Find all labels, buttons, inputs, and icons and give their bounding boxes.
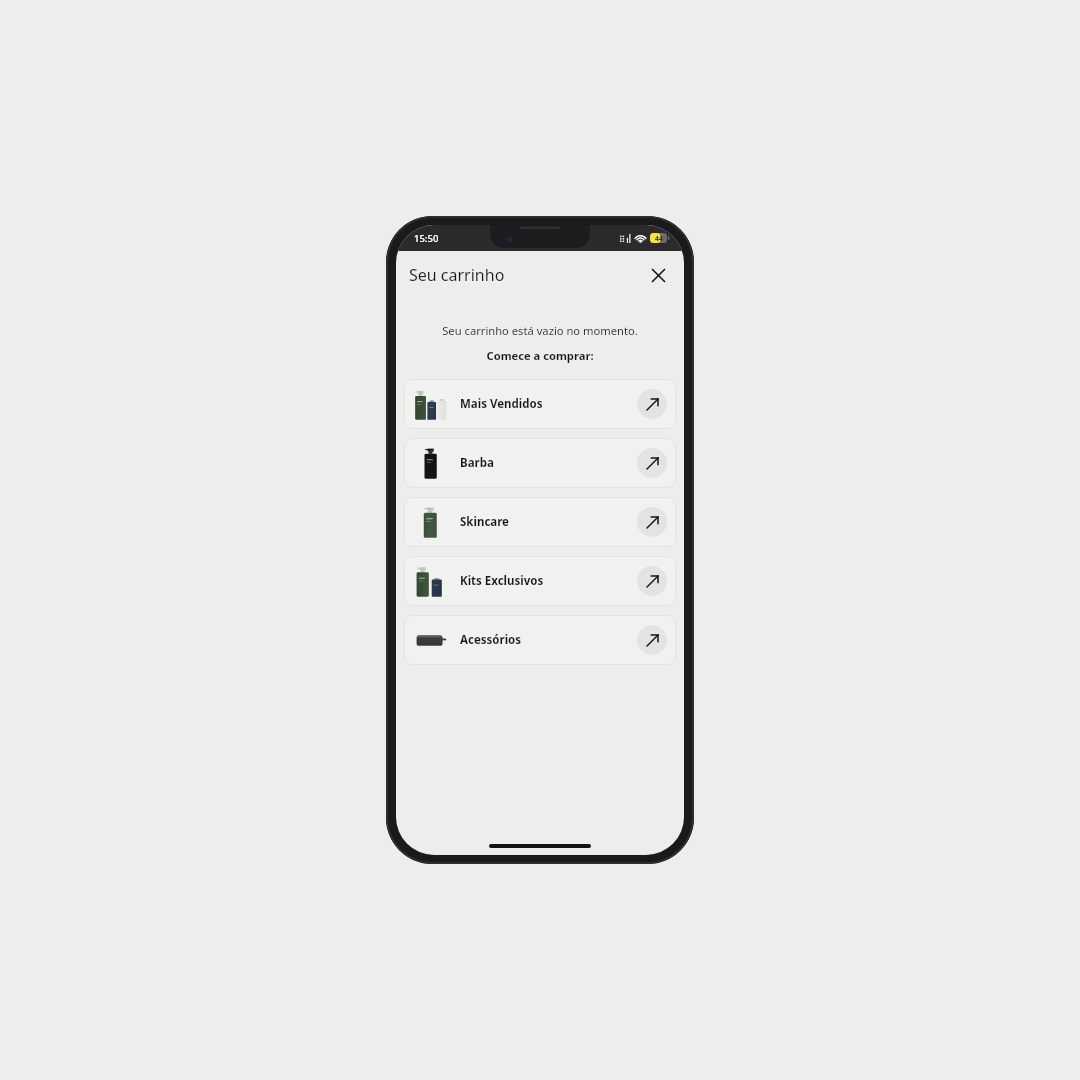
staticText: Skincare bbox=[460, 514, 509, 530]
button[interactable]: Fechar bbox=[645, 262, 671, 288]
staticText: 44 bbox=[655, 234, 663, 243]
button[interactable]: Barba bbox=[404, 438, 676, 488]
staticText: 15:50 bbox=[414, 232, 439, 245]
staticText: Barba bbox=[460, 455, 494, 471]
button[interactable]: Mais Vendidos bbox=[404, 379, 676, 429]
button[interactable]: Skincare bbox=[404, 497, 676, 547]
staticText: Seu carrinho está vazio no momento. bbox=[396, 323, 684, 338]
staticText: Mais Vendidos bbox=[460, 396, 543, 412]
staticText: Comece a comprar: bbox=[396, 348, 684, 363]
staticText: Seu carrinho bbox=[409, 264, 505, 286]
button[interactable]: Acessórios bbox=[404, 615, 676, 665]
staticText: Acessórios bbox=[460, 632, 522, 648]
button[interactable]: Kits Exclusivos bbox=[404, 556, 676, 606]
staticText: Kits Exclusivos bbox=[460, 573, 544, 589]
